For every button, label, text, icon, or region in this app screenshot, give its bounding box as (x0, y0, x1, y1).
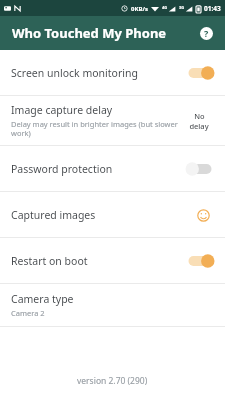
staticText: Image capture delay (11, 103, 113, 117)
button[interactable]: Password protection (0, 146, 225, 191)
staticText: Camera 2 (11, 308, 45, 318)
button[interactable]: Toggle on (186, 253, 214, 269)
staticText: version 2.70 (290) (77, 375, 148, 387)
button[interactable]: Help (195, 22, 217, 44)
staticText: 3G (179, 5, 185, 10)
button[interactable]: Camera type (0, 284, 225, 326)
staticText: Password protection (11, 162, 113, 176)
button[interactable]: Screen unlock monitoring (0, 50, 225, 95)
staticText: Screen unlock monitoring (11, 66, 138, 80)
staticText: Restart on boot (11, 254, 88, 268)
staticText: 0KB/s (131, 5, 148, 13)
button[interactable]: Restart on boot (0, 238, 225, 283)
staticText: Delay may result in brighter images (but… (11, 119, 178, 139)
button[interactable]: Toggle off (186, 161, 214, 177)
staticText: Captured images (11, 208, 96, 222)
button[interactable]: Toggle on (186, 65, 214, 81)
staticText: 4G (162, 5, 168, 10)
button[interactable]: Image capture delay (0, 96, 225, 145)
staticText: Camera type (11, 292, 74, 306)
button[interactable]: Captured images (192, 204, 214, 226)
staticText: ? (204, 27, 209, 39)
button[interactable]: No (184, 111, 214, 131)
staticText: Who Touched My Phone (12, 24, 167, 42)
staticText: delay (189, 121, 209, 131)
button[interactable]: Captured images (0, 192, 225, 237)
staticText: No (194, 111, 205, 121)
staticText: 01:43 (204, 4, 221, 13)
